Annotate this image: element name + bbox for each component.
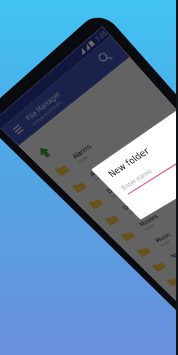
button[interactable]: File Manager phone mockup xyxy=(0,0,178,355)
